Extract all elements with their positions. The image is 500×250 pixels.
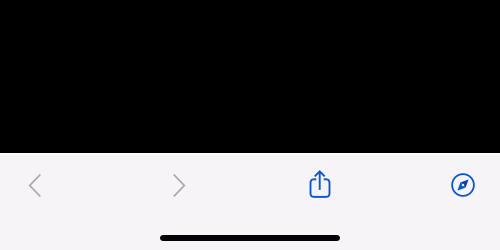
button[interactable]: Back <box>1 160 69 210</box>
button[interactable]: Share <box>286 160 354 210</box>
button[interactable]: Tabs <box>429 160 497 210</box>
button[interactable]: Forward <box>145 160 213 210</box>
